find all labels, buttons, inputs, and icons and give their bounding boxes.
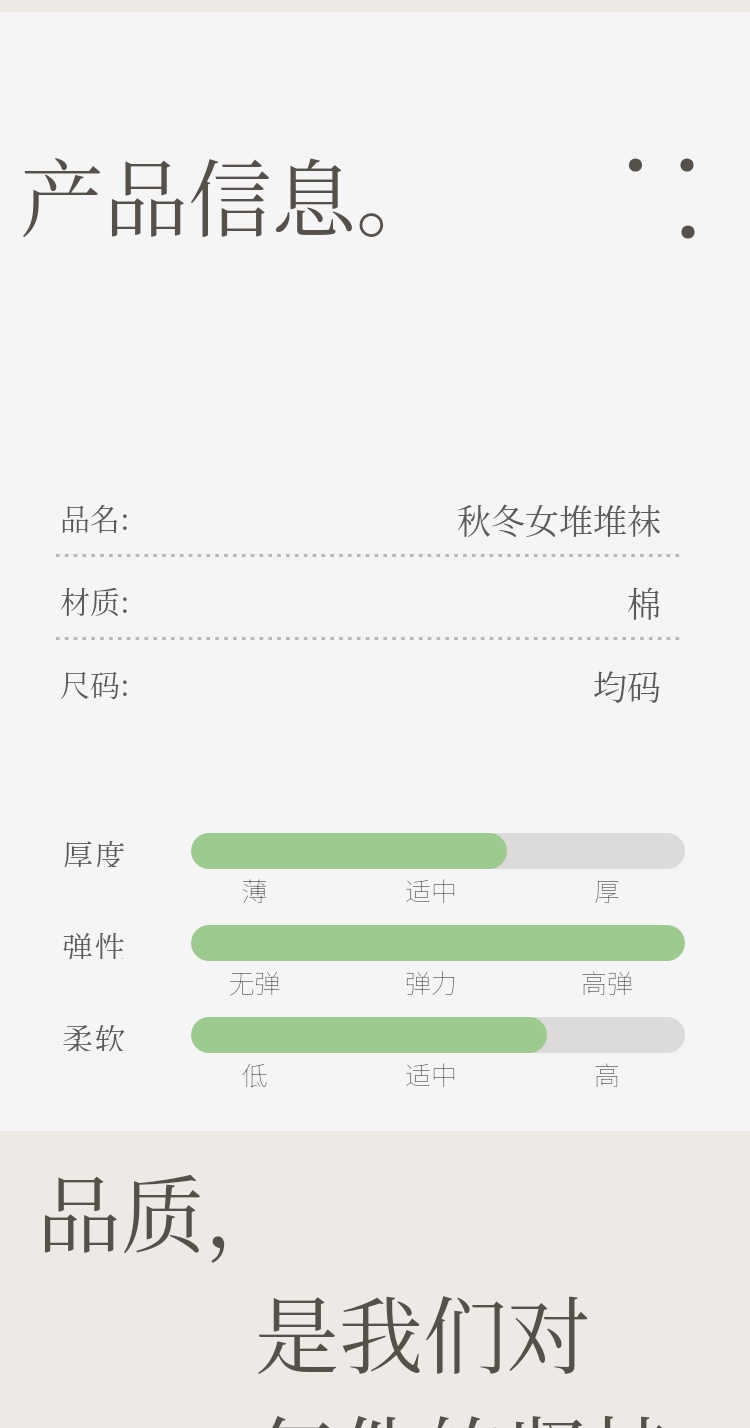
staticText: 适中 [343, 1055, 519, 1093]
staticText: 均码 [593, 661, 661, 710]
staticText: 每件的坚持 [253, 1390, 674, 1428]
staticText: 品名: [60, 495, 130, 538]
staticText: 高 [519, 1055, 695, 1093]
staticText: 弹性 [62, 923, 127, 959]
staticText: 产品信息。 [20, 133, 441, 254]
staticText: 柔软 [62, 1015, 127, 1051]
staticText: 低 [166, 1055, 343, 1093]
staticText: 薄 [166, 871, 343, 909]
staticText: 无弹 [166, 963, 343, 1001]
staticText: 弹力 [343, 963, 519, 1001]
staticText: 秋冬女堆堆袜 [457, 495, 661, 544]
button[interactable]: 品名: [0, 477, 750, 560]
button[interactable]: 尺码: [0, 643, 750, 726]
staticText: 适中 [343, 871, 519, 909]
staticText: 材质: [60, 578, 130, 621]
staticText: 品质， [37, 1149, 290, 1270]
staticText: 高弹 [519, 963, 695, 1001]
staticText: 尺码: [60, 661, 130, 704]
button[interactable]: 材质: [0, 560, 750, 643]
staticText: 厚 [519, 871, 695, 909]
staticText: 是我们对 [255, 1270, 592, 1391]
other: More options [620, 150, 710, 250]
staticText: 棉 [627, 578, 661, 627]
staticText: 厚度 [62, 831, 127, 867]
